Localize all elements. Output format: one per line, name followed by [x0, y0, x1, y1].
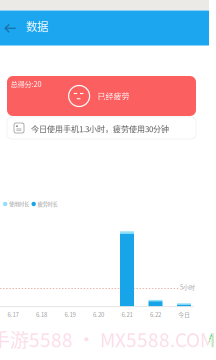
staticText: 5小时	[180, 282, 195, 291]
staticText: 6.22	[150, 310, 161, 319]
button[interactable]: 数据	[26, 9, 56, 42]
staticText: 6.21	[121, 310, 132, 319]
staticText: 总得分:20	[10, 78, 41, 89]
staticText: 已经疲劳	[98, 90, 130, 102]
staticText: 6.20	[93, 310, 104, 319]
staticText: 6.19	[64, 310, 75, 319]
button[interactable]: Back	[0, 10, 28, 45]
staticText: 手游5588 · MX5588.COM	[0, 325, 215, 353]
staticText: 今日使用手机1.3小时，疲劳使用30分钟	[31, 123, 169, 135]
staticText: 使用时长	[9, 200, 29, 208]
staticText: 疲劳时长	[37, 200, 57, 208]
staticText: 数据	[26, 18, 48, 34]
staticText: 6.18	[36, 310, 47, 319]
staticText: 6.17	[7, 310, 18, 319]
staticText: 今日	[178, 310, 190, 319]
